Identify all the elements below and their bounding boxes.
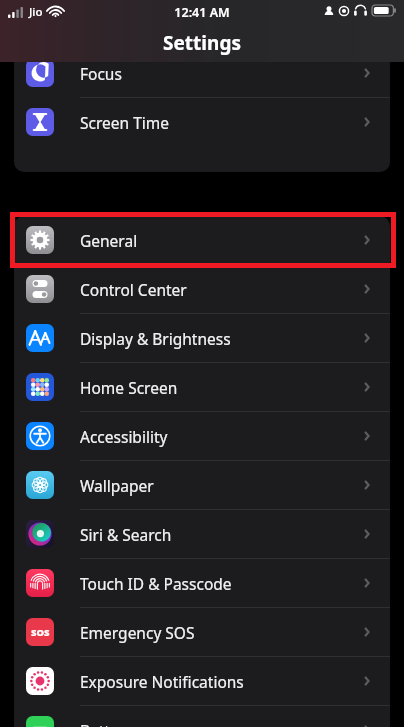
button[interactable]: Screen Time (14, 98, 390, 146)
button[interactable]: Focus (14, 49, 390, 97)
button[interactable]: Siri & Search (14, 510, 390, 558)
button[interactable]: Battery (14, 706, 390, 727)
button[interactable]: Exposure Notifications (14, 657, 390, 705)
staticText: Siri & Search (80, 524, 172, 545)
staticText: Jio (29, 4, 43, 20)
staticText: Exposure Notifications (80, 671, 244, 692)
button[interactable]: Touch ID & Passcode (14, 559, 390, 607)
staticText: General (80, 230, 138, 251)
staticText: Screen Time (80, 112, 169, 133)
button[interactable]: Home Screen (14, 363, 390, 411)
staticText: Battery (80, 720, 134, 727)
staticText: Settings (0, 30, 404, 56)
staticText: Focus (80, 63, 122, 84)
staticText: Home Screen (80, 377, 178, 398)
button[interactable]: Display & Brightness (14, 314, 390, 362)
staticText: Display & Brightness (80, 328, 231, 349)
staticText: Control Center (80, 279, 187, 300)
button[interactable]: SOS (14, 608, 390, 656)
button[interactable]: Control Center (14, 265, 390, 313)
staticText: SOS (31, 626, 50, 639)
button[interactable]: Accessibility (14, 412, 390, 460)
staticText: Accessibility (80, 426, 168, 447)
staticText: Touch ID & Passcode (80, 573, 232, 594)
button[interactable]: Wallpaper (14, 461, 390, 509)
staticText: Wallpaper (80, 475, 154, 496)
staticText: Emergency SOS (80, 622, 195, 643)
button[interactable]: Notifications (14, 24, 390, 48)
staticText: 12:41 AM (0, 4, 404, 21)
button[interactable]: General (14, 216, 390, 264)
